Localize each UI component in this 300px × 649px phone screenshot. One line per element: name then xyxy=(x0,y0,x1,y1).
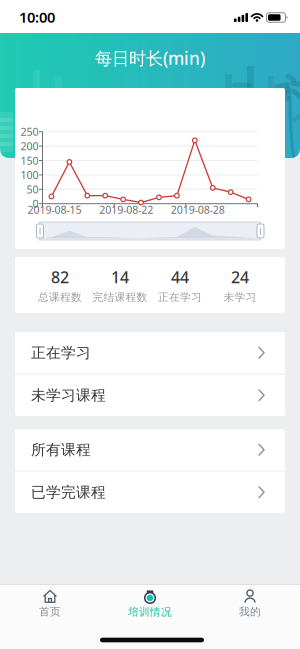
staticText: 首页 xyxy=(39,605,61,618)
staticText: 10:00 xyxy=(19,7,55,27)
button[interactable]: 首页 xyxy=(10,586,90,622)
staticText: 我的 xyxy=(239,605,261,618)
button[interactable]: 我的 xyxy=(210,586,290,622)
staticText: 完结课程数 xyxy=(92,291,147,304)
staticText: 所有课程 xyxy=(31,441,91,459)
staticText: 正在学习 xyxy=(31,344,91,362)
button[interactable]: 正在学习 xyxy=(15,332,285,373)
staticText: 250 xyxy=(20,125,38,139)
button[interactable]: 培训情况 xyxy=(105,586,195,622)
staticText: 2019-08-22 xyxy=(99,202,153,217)
staticText: 200 xyxy=(20,139,38,153)
button[interactable]: 所有课程 xyxy=(15,429,285,470)
staticText: 总课程数 xyxy=(38,291,82,304)
staticText: 14 xyxy=(111,266,129,287)
staticText: 24 xyxy=(231,266,249,287)
staticText: 未学习 xyxy=(223,291,256,304)
staticText: 2019-08-15 xyxy=(27,202,81,217)
button[interactable]: 未学习课程 xyxy=(15,374,285,416)
staticText: 82 xyxy=(51,266,69,287)
staticText: 150 xyxy=(20,153,38,168)
staticText: 44 xyxy=(171,266,189,287)
staticText: 未学习课程 xyxy=(31,386,106,404)
staticText: 培训情况 xyxy=(128,605,172,618)
staticText: 2019-08-28 xyxy=(171,202,225,217)
staticText: 100 xyxy=(20,168,38,182)
staticText: 50 xyxy=(26,182,38,196)
staticText: 正在学习 xyxy=(158,291,202,304)
staticText: 每日时长(min) xyxy=(95,46,205,69)
staticText: 0 xyxy=(32,197,38,211)
staticText: 已学完课程 xyxy=(31,483,106,501)
button[interactable]: 已学完课程 xyxy=(15,471,285,513)
